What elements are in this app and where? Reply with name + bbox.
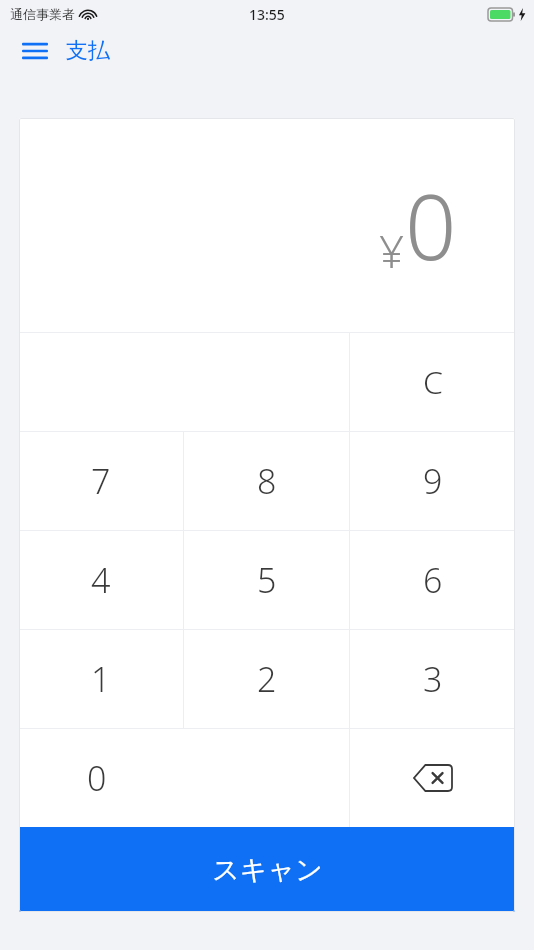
button[interactable]: Clear — [350, 333, 515, 431]
staticText: 1 — [91, 656, 111, 702]
button[interactable]: 8 — [184, 432, 349, 530]
staticText: 通信事業者 — [10, 6, 75, 22]
button[interactable]: スキャン — [19, 827, 515, 912]
staticText: 13:55 — [249, 5, 285, 24]
staticText: 7 — [91, 458, 111, 504]
staticText: 9 — [423, 458, 443, 504]
button[interactable]: Menu — [14, 32, 56, 70]
staticText: スキャン — [212, 853, 323, 887]
button[interactable]: 2 — [184, 630, 349, 728]
staticText: 2 — [257, 656, 277, 702]
staticText: 8 — [257, 458, 277, 504]
button[interactable]: Backspace — [350, 729, 515, 827]
button[interactable]: 7 — [19, 432, 183, 530]
button[interactable]: 9 — [350, 432, 515, 530]
staticText: 0 — [405, 164, 457, 287]
staticText: 5 — [257, 557, 277, 603]
button[interactable]: 1 — [19, 630, 183, 728]
staticText: ¥ — [379, 221, 405, 281]
staticText: 3 — [423, 656, 443, 702]
button[interactable]: 0 — [19, 729, 349, 827]
staticText: 6 — [423, 557, 443, 603]
button[interactable]: 支払 — [66, 37, 110, 65]
staticText: C — [423, 360, 443, 404]
staticText: 4 — [91, 557, 111, 603]
button[interactable]: 5 — [184, 531, 349, 629]
button[interactable]: 6 — [350, 531, 515, 629]
button[interactable]: 3 — [350, 630, 515, 728]
staticText: 0 — [87, 755, 107, 801]
staticText: 支払 — [66, 37, 110, 65]
button[interactable]: 4 — [19, 531, 183, 629]
